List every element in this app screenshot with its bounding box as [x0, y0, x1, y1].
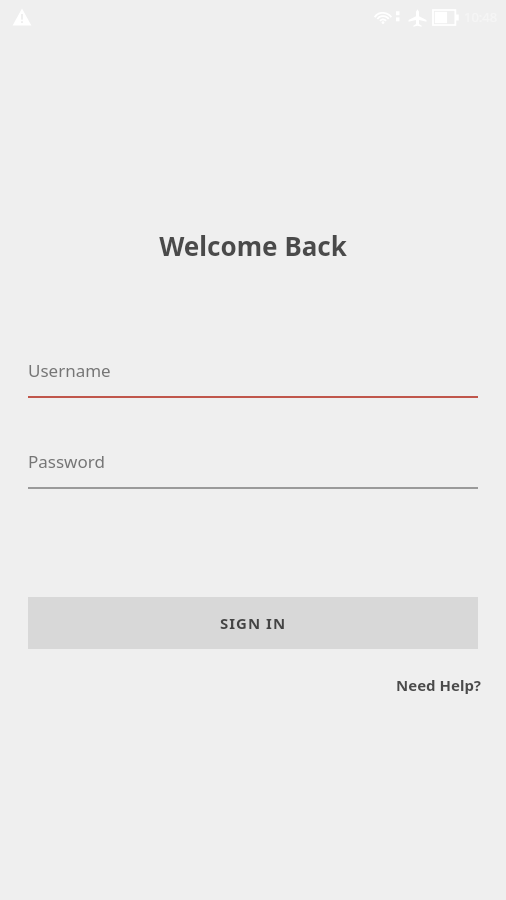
staticText: Welcome Back: [0, 228, 506, 263]
staticText: Need Help?: [396, 675, 482, 695]
button[interactable]: SIGN IN: [28, 597, 478, 649]
button[interactable]: Password: [28, 450, 478, 489]
staticText: SIGN IN: [220, 613, 287, 633]
button[interactable]: Username: [28, 359, 478, 398]
staticText: Username: [28, 359, 111, 382]
staticText: Password: [28, 450, 105, 473]
button[interactable]: Need Help?: [394, 671, 484, 699]
